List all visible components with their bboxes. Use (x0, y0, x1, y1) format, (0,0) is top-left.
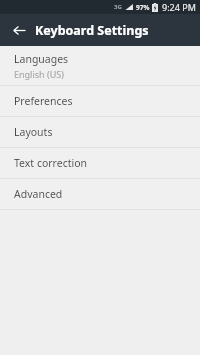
staticText: 3G (114, 3, 122, 11)
staticText: Layouts (14, 125, 53, 139)
staticText: Text correction (14, 156, 88, 170)
button[interactable]: Layouts (0, 117, 200, 147)
staticText: English (US) (14, 68, 64, 80)
button[interactable]: Preferences (0, 86, 200, 116)
staticText: 9:24 PM (162, 1, 196, 13)
button[interactable]: Languages (0, 46, 200, 85)
staticText: Keyboard Settings (35, 22, 149, 39)
staticText: Languages (14, 52, 69, 66)
staticText: Preferences (14, 94, 73, 108)
button[interactable]: Text correction (0, 148, 200, 178)
button[interactable]: Navigate up (8, 19, 30, 41)
button[interactable]: Advanced (0, 179, 200, 209)
staticText: 97% (136, 3, 150, 12)
staticText: Advanced (14, 187, 63, 201)
